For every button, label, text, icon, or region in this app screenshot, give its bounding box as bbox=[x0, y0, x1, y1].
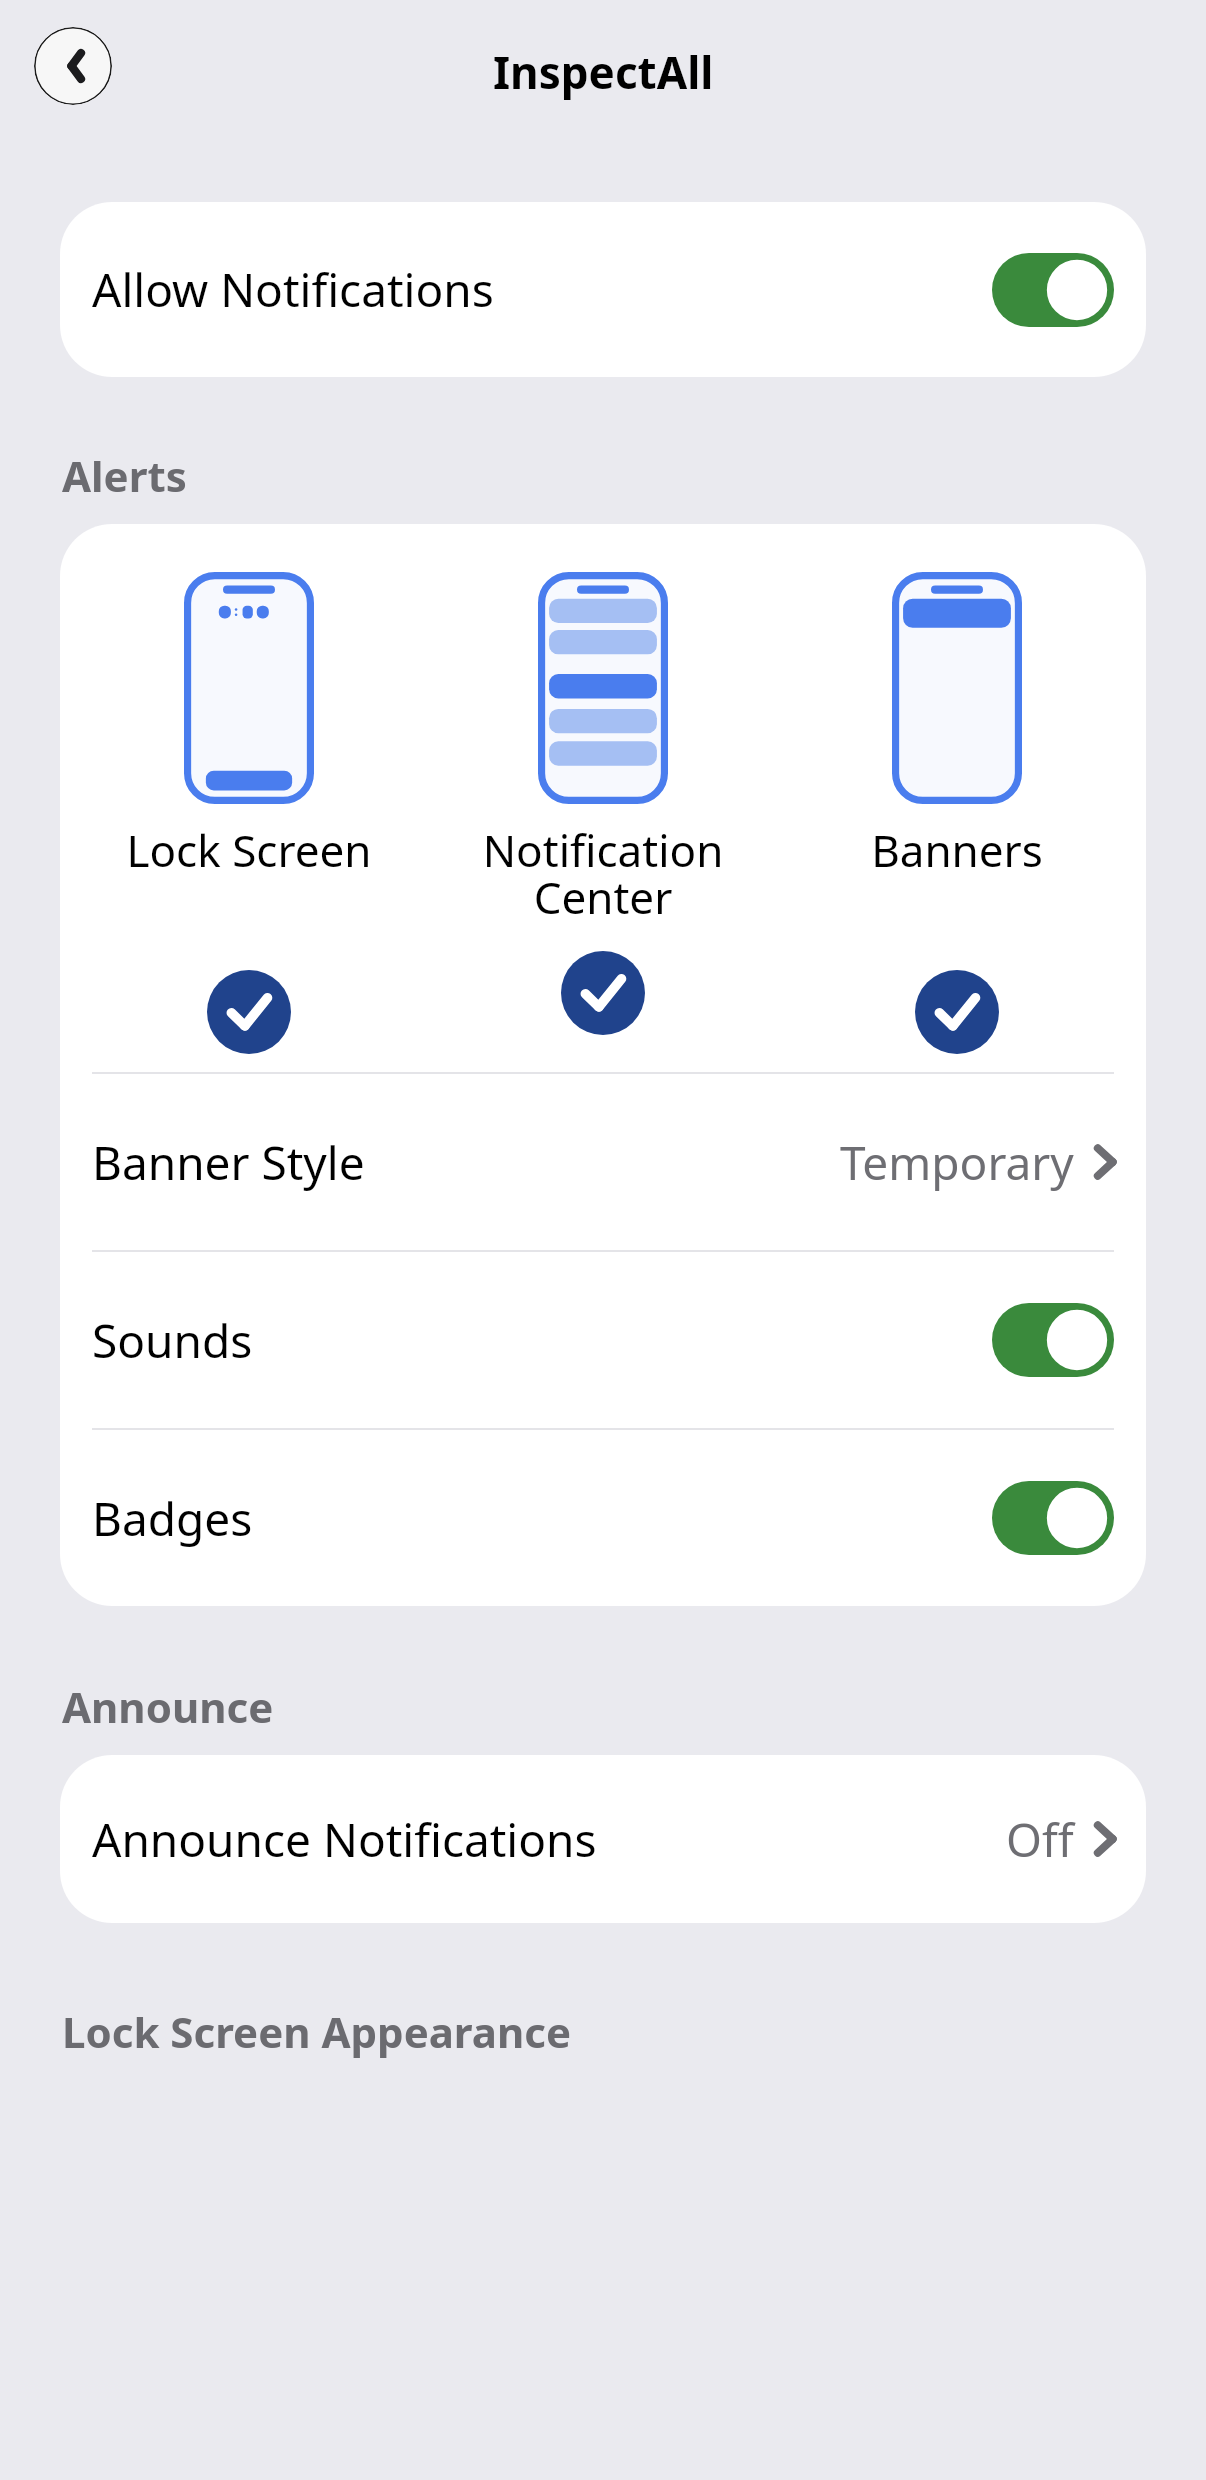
staticText: Lock Screen Appearance bbox=[62, 2003, 571, 2060]
staticText: Off bbox=[1006, 1808, 1074, 1871]
button[interactable]: Sounds bbox=[60, 1252, 1146, 1428]
button[interactable]: Toggle bbox=[992, 253, 1114, 327]
other: Selected Banners bbox=[915, 970, 999, 1054]
staticText: Banners bbox=[792, 820, 1122, 880]
staticText: Sounds bbox=[92, 1309, 253, 1372]
button[interactable]: Badges bbox=[60, 1430, 1146, 1606]
button[interactable]: Back bbox=[34, 27, 112, 105]
staticText: Announce Notifications bbox=[92, 1808, 597, 1871]
staticText: Allow Notifications bbox=[92, 258, 494, 321]
staticText: Banner Style bbox=[92, 1131, 365, 1194]
other: More bbox=[1092, 1139, 1118, 1185]
staticText: Temporary bbox=[840, 1131, 1074, 1194]
staticText: Announce bbox=[62, 1678, 274, 1735]
staticText: InspectAll bbox=[493, 42, 714, 102]
button[interactable]: Notification Center bbox=[438, 572, 768, 1035]
button[interactable]: Banner Style bbox=[60, 1074, 1146, 1250]
button[interactable]: Announce Notifications bbox=[60, 1755, 1146, 1923]
button[interactable]: Toggle bbox=[992, 1303, 1114, 1377]
button[interactable]: Lock Screen bbox=[84, 572, 414, 1054]
staticText: Lock Screen bbox=[84, 820, 414, 880]
button[interactable]: Allow Notifications bbox=[60, 202, 1146, 377]
button[interactable]: Toggle bbox=[992, 1481, 1114, 1555]
other: More bbox=[1092, 1816, 1118, 1862]
staticText: Notification Center bbox=[438, 820, 768, 927]
staticText: Badges bbox=[92, 1487, 253, 1550]
button[interactable]: Banners bbox=[792, 572, 1122, 1054]
other: Selected Lock Screen bbox=[207, 970, 291, 1054]
other: Selected Notification Center bbox=[561, 951, 645, 1035]
staticText: Alerts bbox=[62, 447, 187, 504]
